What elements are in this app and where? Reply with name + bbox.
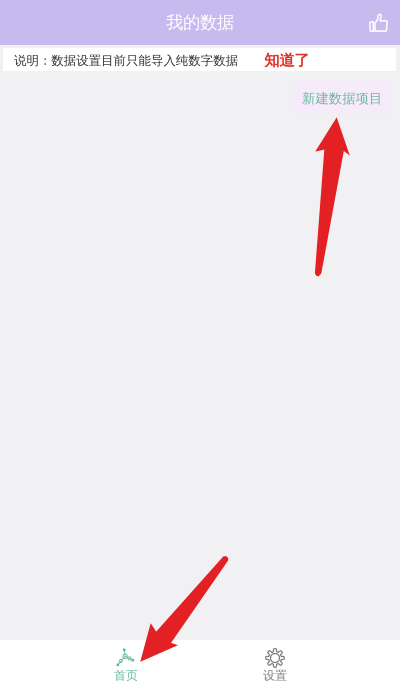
staticText: 知道了 <box>264 51 309 70</box>
staticText: 说明：数据设置目前只能导入纯数字数据 <box>14 53 238 68</box>
button[interactable]: 知道了 <box>261 48 313 71</box>
button[interactable]: 新建数据项目 <box>292 80 392 114</box>
button[interactable]: 点赞 <box>357 0 400 45</box>
button[interactable]: 设置 <box>225 640 325 689</box>
staticText: 设置 <box>263 668 287 683</box>
staticText: 新建数据项目 <box>302 90 382 107</box>
staticText: 我的数据 <box>166 12 234 33</box>
button[interactable]: 首页 <box>76 640 176 689</box>
staticText: 首页 <box>114 668 138 683</box>
